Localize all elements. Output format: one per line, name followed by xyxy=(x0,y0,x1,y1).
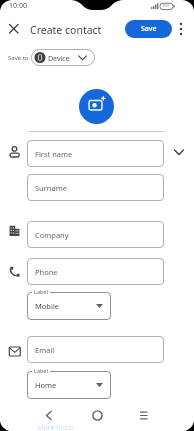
staticText: Save xyxy=(141,24,157,34)
staticText: Email xyxy=(35,345,55,355)
staticText: First name xyxy=(35,149,73,159)
staticText: Device xyxy=(48,54,70,64)
staticText: Label xyxy=(34,288,48,295)
button[interactable]: Email xyxy=(27,336,164,363)
staticText: Home xyxy=(35,380,57,390)
staticText: Phone xyxy=(35,267,58,277)
button[interactable] xyxy=(136,408,151,423)
button[interactable]: Home xyxy=(27,371,111,399)
button[interactable]: More fields xyxy=(0,0,37,10)
button[interactable]: Mobile xyxy=(27,292,111,320)
button[interactable]: Surname xyxy=(27,174,164,201)
staticText: Save to xyxy=(8,54,29,62)
staticText: Create contact xyxy=(30,23,102,37)
button[interactable] xyxy=(176,21,186,37)
staticText: 100 xyxy=(162,3,169,8)
button[interactable]: First name xyxy=(27,140,164,167)
button[interactable]: Company xyxy=(27,221,164,248)
button[interactable]: Device xyxy=(31,49,95,66)
staticText: 10:00 xyxy=(9,1,27,11)
button[interactable] xyxy=(41,408,56,423)
button[interactable] xyxy=(79,89,114,124)
button[interactable]: Save xyxy=(125,20,172,38)
button[interactable] xyxy=(172,145,186,159)
staticText: Label xyxy=(34,367,48,374)
staticText: Company xyxy=(35,230,69,240)
staticText: Mobile xyxy=(35,301,60,311)
button[interactable] xyxy=(7,22,21,36)
staticText: Surname xyxy=(35,183,67,193)
button[interactable] xyxy=(90,408,105,423)
button[interactable]: Phone xyxy=(27,258,164,285)
